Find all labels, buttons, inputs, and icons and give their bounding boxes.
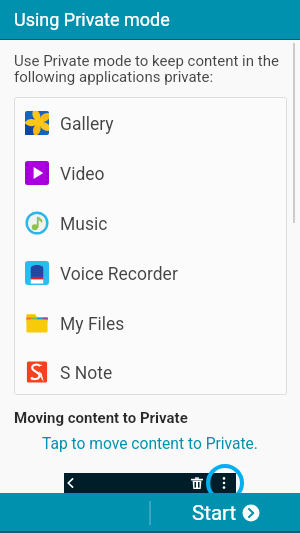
staticText: S Note (60, 363, 113, 384)
staticText: Using Private mode (14, 9, 170, 30)
button[interactable]: Start (151, 493, 300, 533)
staticText: Moving content to Private (14, 409, 188, 427)
button[interactable]: Voice Recorder (14, 247, 287, 297)
staticText: Music (60, 214, 108, 235)
button[interactable]: Gallery (14, 97, 287, 147)
button[interactable]: My Files (14, 297, 287, 347)
button[interactable]: Video (14, 147, 287, 197)
button[interactable]: Music (14, 197, 287, 247)
staticText: Gallery (60, 114, 114, 135)
staticText: Tap to move content to Private. (0, 435, 300, 453)
staticText: My Files (60, 314, 125, 335)
staticText: Voice Recorder (60, 264, 178, 285)
staticText: Video (60, 164, 105, 185)
staticText: Use Private mode to keep content in the … (14, 52, 282, 86)
staticText: Start (192, 501, 237, 525)
button[interactable]: S Note (14, 347, 287, 395)
other: Start (242, 504, 260, 522)
